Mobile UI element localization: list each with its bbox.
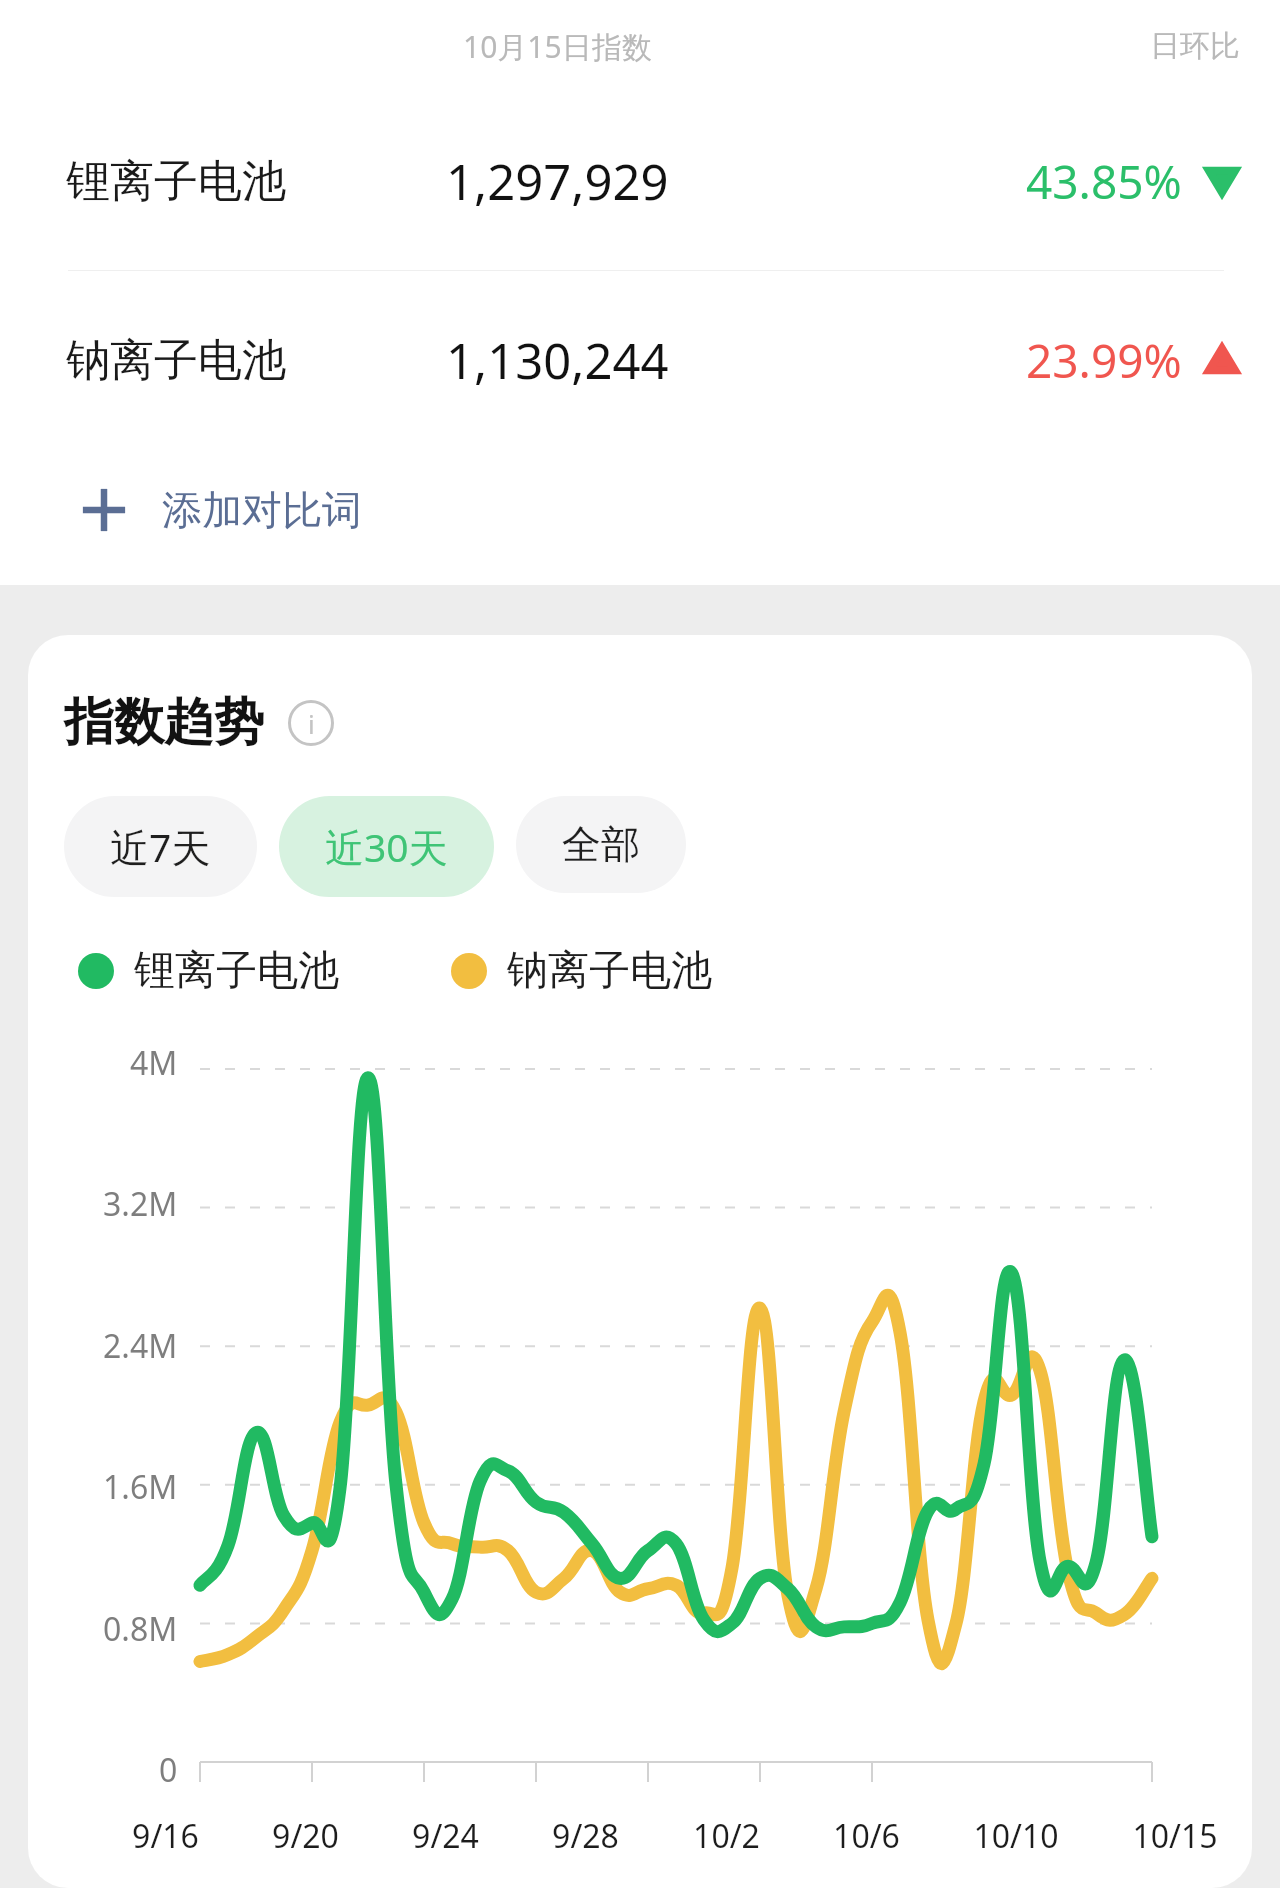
staticText: 10/2 <box>693 1814 760 1858</box>
button[interactable]: 添加对比词 <box>0 449 1280 571</box>
staticText: i <box>308 706 315 741</box>
staticText: 10/15 <box>1132 1814 1218 1858</box>
staticText: 43.85% <box>1026 150 1182 213</box>
staticText: 9/16 <box>132 1814 199 1858</box>
button[interactable]: 钠离子电池 <box>0 271 1280 449</box>
staticText: 1.6M <box>103 1465 178 1509</box>
staticText: 0.8M <box>103 1607 178 1651</box>
staticText: 10/10 <box>973 1814 1059 1858</box>
staticText: 添加对比词 <box>162 485 362 535</box>
button[interactable]: 近30天 <box>279 796 494 897</box>
staticText: 2.4M <box>103 1324 178 1368</box>
button[interactable]: 锂离子电池 <box>0 92 1280 270</box>
staticText: 9/20 <box>272 1814 339 1858</box>
staticText: 3.2M <box>103 1182 178 1226</box>
staticText: 全部 <box>562 820 640 869</box>
staticText: 1,130,244 <box>446 327 669 394</box>
button[interactable]: 指数趋势说明 <box>288 700 334 746</box>
staticText: 1,297,929 <box>446 148 669 215</box>
staticText: 0 <box>159 1748 178 1792</box>
staticText: 钠离子电池 <box>507 945 712 997</box>
staticText: 23.99% <box>1026 329 1182 392</box>
staticText: 日环比 <box>1150 27 1240 65</box>
button[interactable]: 近7天 <box>64 796 257 897</box>
staticText: 锂离子电池 <box>66 154 286 209</box>
staticText: 4M <box>130 1041 178 1085</box>
staticText: 钠离子电池 <box>66 333 286 388</box>
staticText: 10/6 <box>833 1814 900 1858</box>
staticText: 近7天 <box>110 820 211 873</box>
staticText: 锂离子电池 <box>134 945 339 997</box>
staticText: 9/24 <box>412 1814 479 1858</box>
button[interactable]: 全部 <box>516 796 686 893</box>
staticText: 9/28 <box>552 1814 619 1858</box>
staticText: 近30天 <box>325 820 448 873</box>
staticText: 指数趋势 <box>64 691 264 754</box>
staticText: 10月15日指数 <box>463 26 652 67</box>
